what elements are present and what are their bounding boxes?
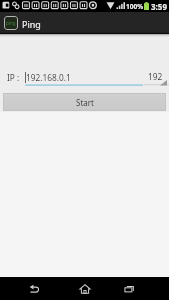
staticText: IP : bbox=[7, 72, 20, 83]
button[interactable]: Start bbox=[3, 93, 166, 111]
staticText: Start bbox=[76, 97, 94, 108]
staticText: ping bbox=[6, 20, 16, 26]
staticText: 3:59 bbox=[151, 1, 167, 12]
staticText: 192 bbox=[148, 71, 163, 82]
button[interactable]: Home bbox=[73, 277, 97, 300]
button[interactable]: Recent apps bbox=[117, 277, 141, 300]
staticText: 100% bbox=[126, 2, 144, 11]
staticText: 192.168.0.1 bbox=[26, 72, 71, 83]
button[interactable]: Back bbox=[22, 277, 46, 300]
staticText: Ping bbox=[22, 18, 41, 30]
